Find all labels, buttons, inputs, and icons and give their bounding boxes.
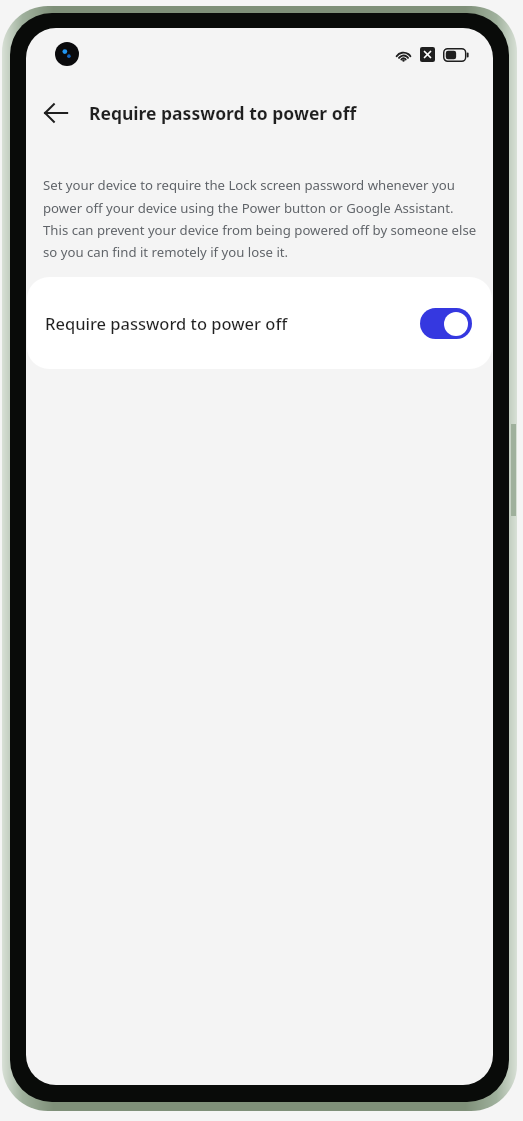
staticText: Require password to power off: [45, 312, 412, 334]
button[interactable]: Require password to power off toggle: [420, 308, 472, 339]
staticText: Set your device to require the Lock scre…: [43, 176, 479, 261]
button[interactable]: Back: [32, 89, 80, 137]
staticText: Require password to power off: [89, 101, 357, 125]
button[interactable]: Require password to power off: [27, 277, 492, 369]
